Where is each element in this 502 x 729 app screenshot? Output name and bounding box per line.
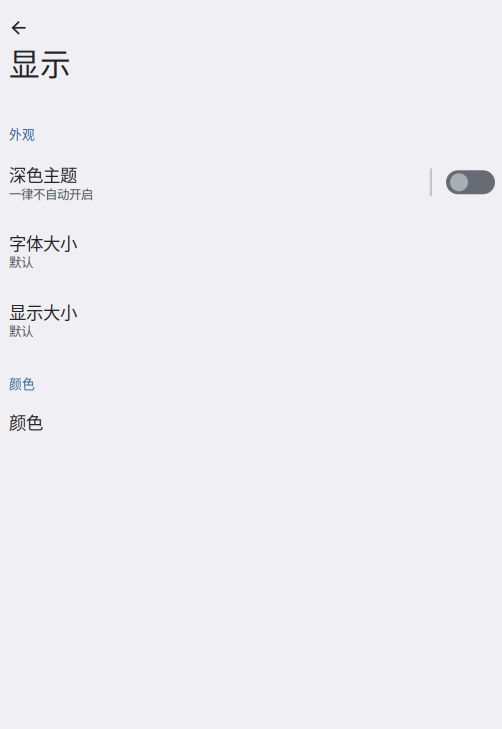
staticText: 字体大小 xyxy=(9,230,77,255)
staticText: 显示 xyxy=(9,40,71,84)
button[interactable]: 关闭 xyxy=(439,162,502,203)
staticText: 深色主题 xyxy=(9,162,77,187)
button[interactable]: 显示大小 xyxy=(0,299,502,340)
staticText: 显示大小 xyxy=(9,299,77,324)
staticText: 一律不自动开启 xyxy=(9,185,93,203)
staticText: 外观 xyxy=(9,124,35,143)
button[interactable]: 字体大小 xyxy=(0,230,502,271)
staticText: 默认 xyxy=(9,322,33,340)
button[interactable]: 深色主题 xyxy=(0,162,430,203)
button[interactable]: 颜色 xyxy=(0,409,502,434)
staticText: 颜色 xyxy=(9,409,43,434)
staticText: 颜色 xyxy=(9,374,35,392)
staticText: 默认 xyxy=(9,253,33,271)
button[interactable]: 返回 xyxy=(0,8,40,48)
